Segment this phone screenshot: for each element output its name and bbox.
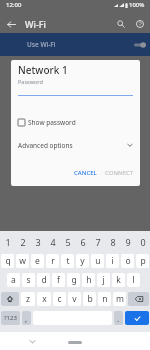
- button[interactable]: Enter: [125, 311, 149, 325]
- staticText: b: [87, 293, 93, 305]
- staticText: 2: [20, 236, 26, 248]
- button[interactable]: 7: [90, 235, 105, 249]
- button[interactable]: 9: [120, 235, 135, 249]
- staticText: h: [86, 274, 92, 286]
- staticText: Use Wi-Fi: [27, 40, 56, 49]
- staticText: t: [66, 255, 70, 267]
- staticText: Network 1: [18, 63, 68, 77]
- button[interactable]: Hide keyboard: [25, 334, 40, 349]
- button[interactable]: 4: [45, 235, 60, 249]
- staticText: c: [57, 293, 62, 305]
- button[interactable]: s: [22, 273, 35, 287]
- button[interactable]: v: [68, 292, 81, 306]
- button[interactable]: Help: [131, 15, 149, 33]
- staticText: 7: [95, 236, 101, 248]
- button[interactable]: Home: [68, 341, 82, 344]
- button[interactable]: Show password: [18, 118, 76, 127]
- staticText: z: [26, 293, 30, 305]
- button[interactable]: 5: [60, 235, 75, 249]
- staticText: y: [80, 255, 85, 267]
- staticText: s: [26, 274, 31, 286]
- staticText: 5: [65, 236, 71, 248]
- button[interactable]: i: [106, 254, 119, 268]
- staticText: i: [111, 255, 114, 267]
- staticText: 6: [80, 236, 86, 248]
- button[interactable]: CANCEL: [70, 166, 101, 180]
- button[interactable]: e: [31, 254, 44, 268]
- button[interactable]: 3: [30, 235, 45, 249]
- button[interactable]: r: [46, 254, 59, 268]
- button[interactable]: ?123: [1, 311, 20, 325]
- staticText: v: [72, 293, 77, 305]
- staticText: e: [35, 255, 40, 267]
- staticText: CANCEL: [74, 169, 97, 177]
- staticText: Wi-Fi: [25, 18, 46, 30]
- button[interactable]: m: [113, 292, 126, 306]
- staticText: CONNECT: [105, 169, 134, 177]
- button[interactable]: 6: [75, 235, 90, 249]
- staticText: ,: [25, 313, 28, 324]
- button[interactable]: l: [127, 273, 140, 287]
- staticText: o: [125, 255, 131, 267]
- staticText: a: [11, 274, 16, 286]
- button[interactable]: Shift: [1, 292, 19, 306]
- button[interactable]: j: [97, 273, 110, 287]
- button[interactable]: a: [7, 273, 20, 287]
- button[interactable]: t: [61, 254, 74, 268]
- staticText: r: [51, 255, 55, 267]
- staticText: 100%: [129, 1, 145, 9]
- staticText: q: [5, 255, 11, 267]
- staticText: Show password: [28, 118, 76, 127]
- button[interactable]: c: [53, 292, 66, 306]
- staticText: g: [71, 274, 77, 286]
- button[interactable]: f: [52, 273, 65, 287]
- staticText: u: [95, 255, 101, 267]
- button[interactable]: n: [98, 292, 111, 306]
- button[interactable]: u: [91, 254, 104, 268]
- button[interactable]: .: [114, 311, 123, 325]
- button[interactable]: Wi-Fi toggle: [132, 37, 148, 53]
- staticText: m: [116, 293, 124, 305]
- staticText: Password: [18, 78, 43, 85]
- staticText: 4: [50, 236, 56, 248]
- staticText: 12:00: [6, 1, 22, 9]
- staticText: d: [41, 274, 47, 286]
- button[interactable]: 0: [135, 235, 150, 249]
- button[interactable]: 8: [105, 235, 120, 249]
- button[interactable]: ,: [22, 311, 31, 325]
- button[interactable]: Advanced options: [18, 138, 133, 152]
- button[interactable]: d: [37, 273, 50, 287]
- staticText: ?123: [4, 314, 17, 322]
- button[interactable]: 1: [0, 235, 15, 249]
- staticText: Advanced options: [18, 141, 73, 150]
- staticText: 8: [110, 236, 116, 248]
- button[interactable]: q: [1, 254, 14, 268]
- button[interactable]: y: [76, 254, 89, 268]
- staticText: 1: [5, 236, 11, 248]
- button[interactable]: k: [112, 273, 125, 287]
- button[interactable]: Backspace: [128, 292, 149, 306]
- staticText: p: [140, 255, 146, 267]
- button[interactable]: g: [67, 273, 80, 287]
- staticText: f: [57, 274, 60, 286]
- button[interactable]: p: [136, 254, 149, 268]
- button[interactable]: CONNECT: [101, 166, 138, 180]
- staticText: 0: [140, 236, 146, 248]
- staticText: .: [117, 313, 120, 324]
- staticText: n: [102, 293, 108, 305]
- staticText: x: [42, 293, 47, 305]
- button[interactable]: b: [83, 292, 96, 306]
- staticText: l: [132, 274, 135, 286]
- button[interactable]: h: [82, 273, 95, 287]
- button[interactable]: Back: [2, 15, 20, 33]
- button[interactable]: z: [21, 292, 35, 306]
- button[interactable]: 2: [15, 235, 30, 249]
- staticText: j: [102, 274, 105, 286]
- button[interactable]: x: [37, 292, 51, 306]
- staticText: 3: [35, 236, 41, 248]
- button[interactable]: w: [16, 254, 29, 268]
- button[interactable]: o: [121, 254, 134, 268]
- button[interactable]: Search: [112, 15, 130, 33]
- staticText: 9: [125, 236, 131, 248]
